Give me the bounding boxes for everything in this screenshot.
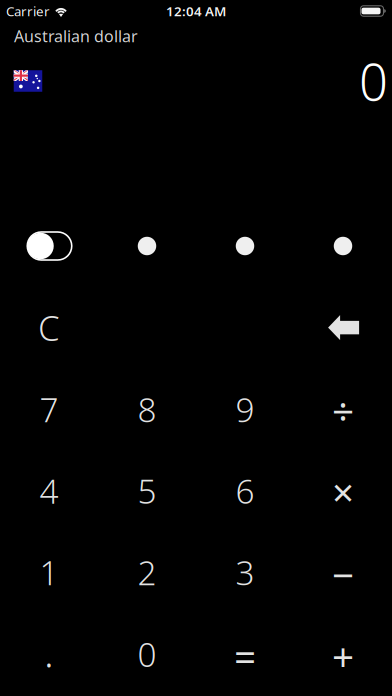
staticText: Australian dollar xyxy=(14,25,138,47)
staticText: 8 xyxy=(137,387,156,431)
button[interactable]: 3 xyxy=(196,532,294,613)
button[interactable]: Slot 2 xyxy=(98,205,196,287)
button[interactable]: . xyxy=(0,613,98,695)
button[interactable]: 8 xyxy=(98,368,196,450)
staticText: 7 xyxy=(39,387,58,431)
button[interactable]: 1 xyxy=(0,532,98,613)
staticText: − xyxy=(332,549,354,600)
button[interactable]: 9 xyxy=(196,368,294,450)
button[interactable]: Slot 3 xyxy=(196,205,294,287)
staticText: = xyxy=(234,630,256,682)
button[interactable]: 6 xyxy=(196,450,294,532)
button[interactable]: Delete xyxy=(294,287,392,368)
staticText: 0 xyxy=(359,47,388,115)
button[interactable]: 2 xyxy=(98,532,196,613)
button[interactable]: Australian dollar currency xyxy=(0,58,56,104)
staticText: × xyxy=(332,466,354,517)
staticText: 3 xyxy=(235,550,254,595)
button[interactable]: = xyxy=(196,613,294,695)
staticText: C xyxy=(38,305,60,351)
button[interactable]: 0 xyxy=(328,53,388,109)
button[interactable]: − xyxy=(294,532,392,613)
button[interactable]: 7 xyxy=(0,368,98,450)
staticText: 4 xyxy=(39,469,58,513)
button[interactable]: 4 xyxy=(0,450,98,532)
staticText: Carrier xyxy=(6,2,50,20)
button[interactable]: × xyxy=(294,450,392,532)
button[interactable]: Slot 4 xyxy=(294,205,392,287)
staticText: ÷ xyxy=(332,385,354,436)
button[interactable]: C xyxy=(0,287,98,368)
button[interactable]: Toggle currency direction xyxy=(0,205,98,287)
staticText: 5 xyxy=(137,469,156,513)
staticText: 12:04 AM xyxy=(166,2,226,20)
staticText: . xyxy=(44,625,54,678)
button[interactable]: + xyxy=(294,613,392,695)
staticText: 0 xyxy=(137,632,156,676)
staticText: + xyxy=(332,630,354,682)
staticText: 6 xyxy=(235,469,254,513)
staticText: 9 xyxy=(235,387,254,431)
button[interactable]: 0 xyxy=(98,613,196,695)
button[interactable]: ÷ xyxy=(294,368,392,450)
staticText: 1 xyxy=(39,550,58,595)
staticText: 2 xyxy=(137,550,156,595)
button[interactable]: 5 xyxy=(98,450,196,532)
